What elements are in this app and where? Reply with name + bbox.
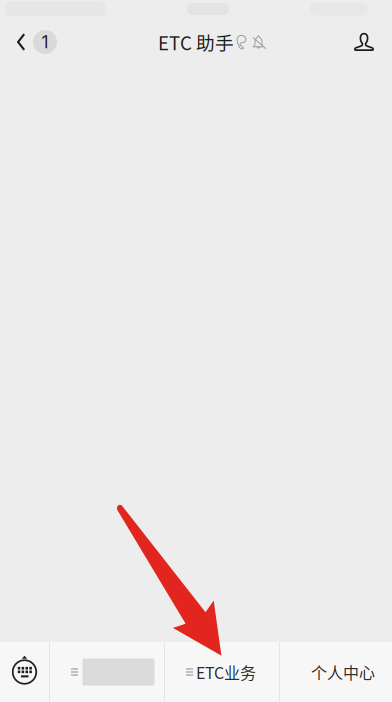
staticText: 1 <box>41 31 48 52</box>
staticText: 个人中心 <box>311 660 375 684</box>
button[interactable]: Keyboard <box>0 642 49 702</box>
button[interactable]: Menu <box>50 642 164 702</box>
button[interactable]: ETC业务 <box>165 642 279 702</box>
button[interactable]: 个人中心 <box>280 642 392 702</box>
button[interactable]: Back <box>0 18 69 66</box>
button[interactable]: Contact card <box>338 18 392 66</box>
staticText: ETC业务 <box>196 660 256 684</box>
staticText: ETC 助手 <box>158 28 234 55</box>
